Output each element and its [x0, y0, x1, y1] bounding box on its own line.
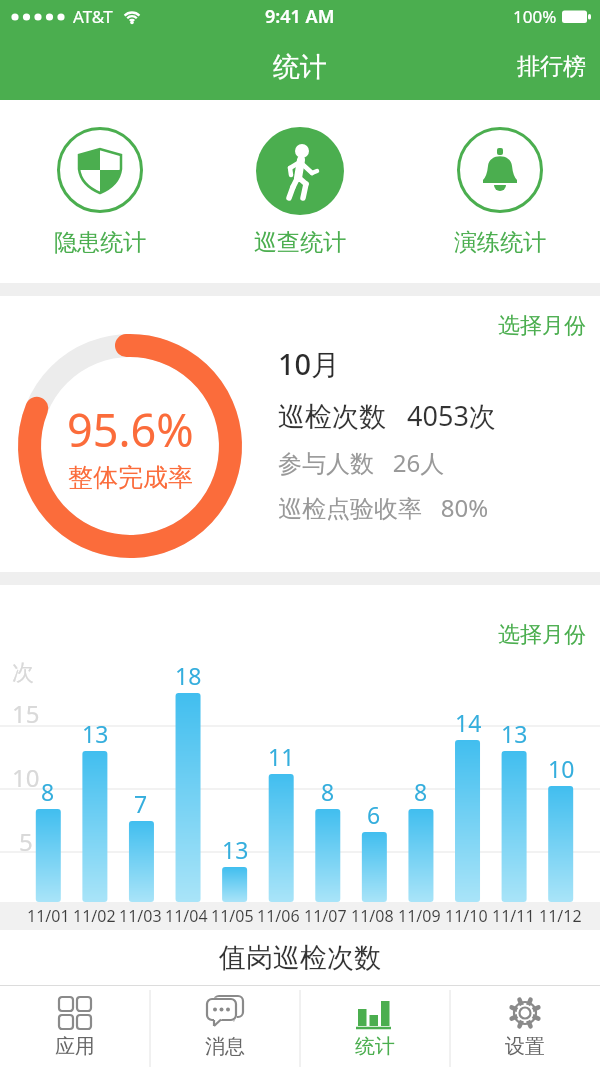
button[interactable]: 设置	[450, 985, 600, 1067]
staticText: 统计	[273, 50, 327, 84]
staticText: 选择月份	[498, 621, 586, 649]
staticText: 13	[222, 834, 249, 865]
staticText: 11/11	[492, 905, 535, 927]
button[interactable]: 统计	[300, 985, 450, 1067]
staticText: 11/02	[73, 905, 116, 927]
button[interactable]: 消息	[150, 985, 300, 1067]
staticText: 演练统计	[454, 228, 546, 257]
staticText: 选择月份	[498, 312, 586, 340]
staticText: 13	[82, 718, 109, 749]
staticText: 10月	[278, 344, 341, 384]
staticText: 7	[134, 788, 148, 819]
staticText: 8	[414, 776, 428, 807]
staticText: 11/07	[304, 905, 347, 927]
staticText: 次	[12, 659, 34, 687]
staticText: 11/04	[165, 905, 208, 927]
button[interactable]: 隐患统计	[54, 127, 146, 257]
staticText: 11/01	[27, 905, 70, 927]
staticText: 6	[367, 799, 381, 830]
button[interactable]: 演练统计	[454, 127, 546, 257]
staticText: 9:41 AM	[265, 4, 335, 29]
staticText: 巡检次数 4053次	[278, 397, 496, 434]
staticText: 11/08	[351, 905, 394, 927]
staticText: 8	[41, 776, 55, 807]
staticText: 隐患统计	[54, 228, 146, 257]
staticText: 18	[175, 660, 202, 691]
staticText: 11	[268, 741, 295, 772]
staticText: 100%	[513, 5, 557, 28]
staticText: 参与人数 26人	[278, 446, 445, 479]
staticText: 整体完成率	[68, 462, 193, 493]
staticText: 11/12	[539, 905, 582, 927]
staticText: 95.6%	[67, 399, 194, 460]
staticText: 14	[455, 707, 482, 738]
button[interactable]: 排行榜	[503, 33, 600, 100]
staticText: 5	[19, 825, 33, 858]
staticText: 11/10	[445, 905, 488, 927]
staticText: 11/03	[119, 905, 162, 927]
staticText: 8	[321, 776, 335, 807]
staticText: 11/09	[398, 905, 441, 927]
staticText: 排行榜	[517, 52, 586, 81]
staticText: 值岗巡检次数	[219, 941, 381, 975]
staticText: AT&T	[73, 5, 113, 28]
staticText: 15	[12, 697, 40, 730]
staticText: 设置	[505, 1034, 545, 1059]
staticText: 巡检点验收率 80%	[278, 491, 489, 524]
staticText: 10	[548, 753, 575, 784]
button[interactable]: 选择月份	[498, 585, 600, 649]
staticText: 11/05	[211, 905, 254, 927]
staticText: 消息	[205, 1034, 245, 1059]
staticText: 统计	[355, 1034, 395, 1059]
staticText: 10	[12, 761, 40, 794]
button[interactable]: 应用	[0, 985, 150, 1067]
staticText: 巡查统计	[254, 228, 346, 257]
staticText: 13	[501, 718, 528, 749]
button[interactable]: 选择月份	[498, 296, 600, 340]
button[interactable]: 巡查统计	[254, 127, 346, 257]
staticText: 11/06	[257, 905, 300, 927]
staticText: 应用	[55, 1034, 95, 1059]
